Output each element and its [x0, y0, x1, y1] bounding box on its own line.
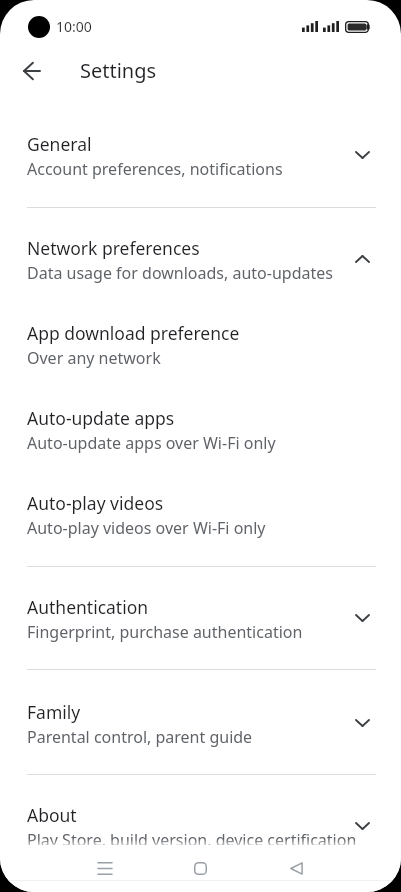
staticText: Auto-play videos over Wi-Fi only [27, 517, 266, 539]
button[interactable]: Authentication [0, 595, 401, 643]
staticText: Account preferences, notifications [27, 158, 283, 180]
staticText: Family [27, 700, 81, 724]
staticText: Parental control, parent guide [27, 726, 253, 748]
staticText: Play Store, build version, device certif… [27, 829, 357, 851]
staticText: Auto-update apps over Wi-Fi only [27, 432, 276, 454]
staticText: 10:00 [56, 17, 92, 36]
button[interactable]: Auto-update apps [0, 406, 401, 454]
staticText: Over any network [27, 347, 161, 369]
staticText: App download preference [27, 321, 240, 345]
staticText: Auto-update apps [27, 406, 175, 430]
staticText: About [27, 803, 77, 827]
staticText: Auto-play videos [27, 491, 164, 515]
staticText: Network preferences [27, 236, 200, 260]
staticText: Settings [80, 57, 157, 84]
button[interactable]: App download preference [0, 321, 401, 369]
button[interactable]: About [0, 803, 401, 851]
staticText: Data usage for downloads, auto-updates [27, 262, 333, 284]
button[interactable]: Home [180, 848, 220, 888]
button[interactable]: Auto-play videos [0, 491, 401, 539]
staticText: Authentication [27, 595, 149, 619]
button[interactable]: Back [10, 49, 54, 93]
button[interactable]: Network preferences [0, 236, 401, 284]
button[interactable]: Recent apps [85, 848, 125, 888]
button[interactable]: Back [276, 848, 316, 888]
button[interactable]: Family [0, 700, 401, 748]
button[interactable]: General [0, 132, 401, 180]
staticText: Fingerprint, purchase authentication [27, 621, 303, 643]
staticText: General [27, 132, 92, 156]
